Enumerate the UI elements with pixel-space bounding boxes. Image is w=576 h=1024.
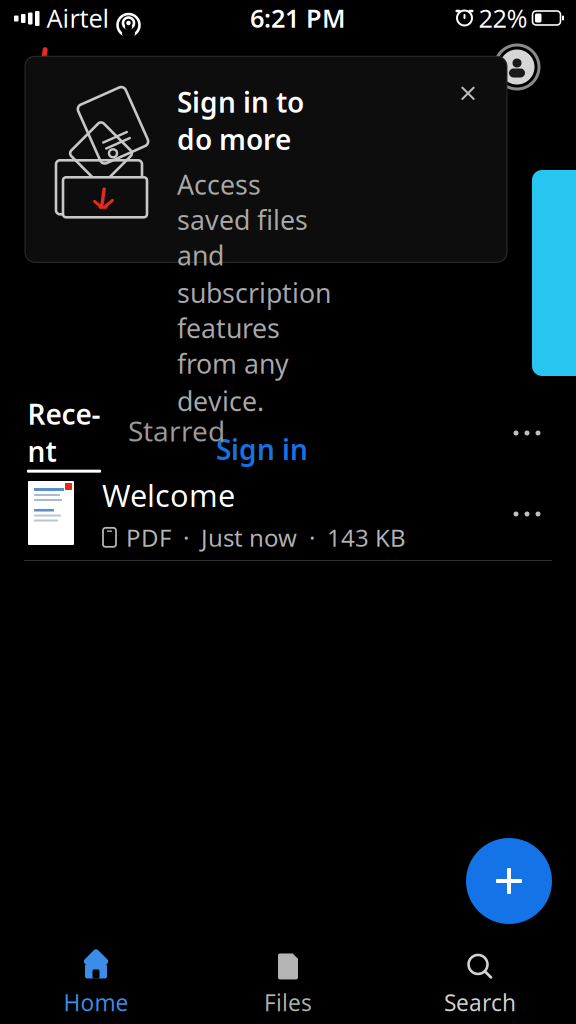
button[interactable]: Starred [128,396,225,462]
staticText: Airtel [46,1,109,35]
staticText: Files [264,987,312,1017]
staticText: PDF · Just now · 143 KB [126,521,406,553]
button[interactable]: Home [0,946,192,1024]
button[interactable]: More options [500,408,554,458]
staticText: Sign in [216,430,308,468]
staticText: Home [63,987,128,1017]
button[interactable]: Dismiss [451,76,485,110]
staticText: Welcome [26,97,246,163]
button[interactable]: Files [192,946,384,1024]
button[interactable]: More tools [532,170,576,376]
button[interactable]: Acrobat [14,40,68,94]
staticText: Access saved files and [177,167,308,273]
staticText: 6:21 PM [250,1,346,35]
button[interactable]: Search [384,946,576,1024]
button[interactable]: Account [492,42,542,92]
staticText: Recent [27,395,100,470]
button[interactable]: Welcome [0,468,576,560]
button[interactable]: Recent [27,396,101,462]
staticText: Search [444,987,516,1017]
staticText: Sign in to do more [177,83,304,158]
staticText: Starred [128,412,225,449]
staticText: device. [177,383,264,418]
staticText: Welcome [102,475,235,515]
button[interactable]: Sign in to do more [25,170,507,376]
button[interactable]: Sign in [216,426,335,472]
staticText: 22% [478,1,527,35]
button[interactable]: Create [466,838,552,924]
button[interactable]: File options [500,487,554,541]
staticText: subscription features from any [177,275,331,381]
